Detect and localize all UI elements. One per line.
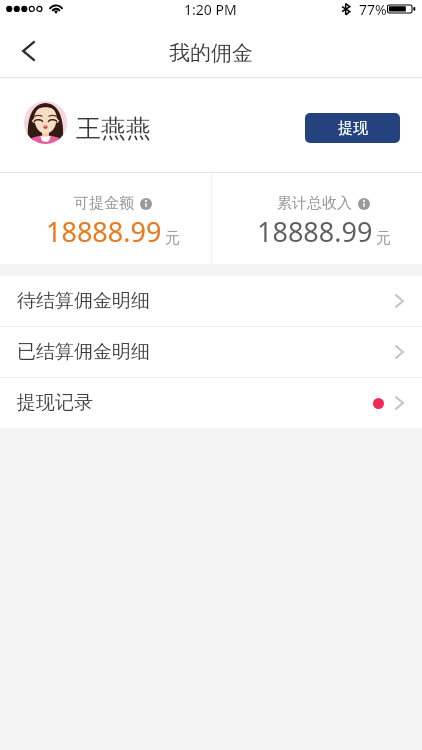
- button[interactable]: Back: [0, 28, 56, 78]
- staticText: 我的佣金: [169, 40, 253, 66]
- staticText: 可提金额: [74, 194, 134, 213]
- staticText: 王燕燕: [76, 113, 151, 144]
- staticText: 1:20 PM: [184, 0, 237, 19]
- button[interactable]: 累计总收入 说明: [358, 198, 370, 210]
- staticText: 提现: [338, 119, 368, 138]
- button[interactable]: 王燕燕: [0, 104, 163, 147]
- staticText: 18888.99: [257, 213, 373, 250]
- staticText: 元: [376, 229, 391, 248]
- staticText: 累计总收入: [277, 194, 352, 213]
- staticText: 18888.99: [46, 213, 162, 250]
- staticText: 待结算佣金明细: [17, 289, 150, 313]
- staticText: 已结算佣金明细: [17, 340, 150, 364]
- button[interactable]: 可提金额 说明: [140, 198, 152, 210]
- staticText: 元: [165, 229, 180, 248]
- button[interactable]: 已结算佣金明细: [0, 327, 422, 377]
- button[interactable]: 提现记录: [0, 378, 422, 428]
- staticText: 提现记录: [17, 391, 93, 415]
- button[interactable]: 待结算佣金明细: [0, 276, 422, 326]
- button[interactable]: 提现: [305, 113, 400, 143]
- staticText: 77%: [359, 0, 387, 19]
